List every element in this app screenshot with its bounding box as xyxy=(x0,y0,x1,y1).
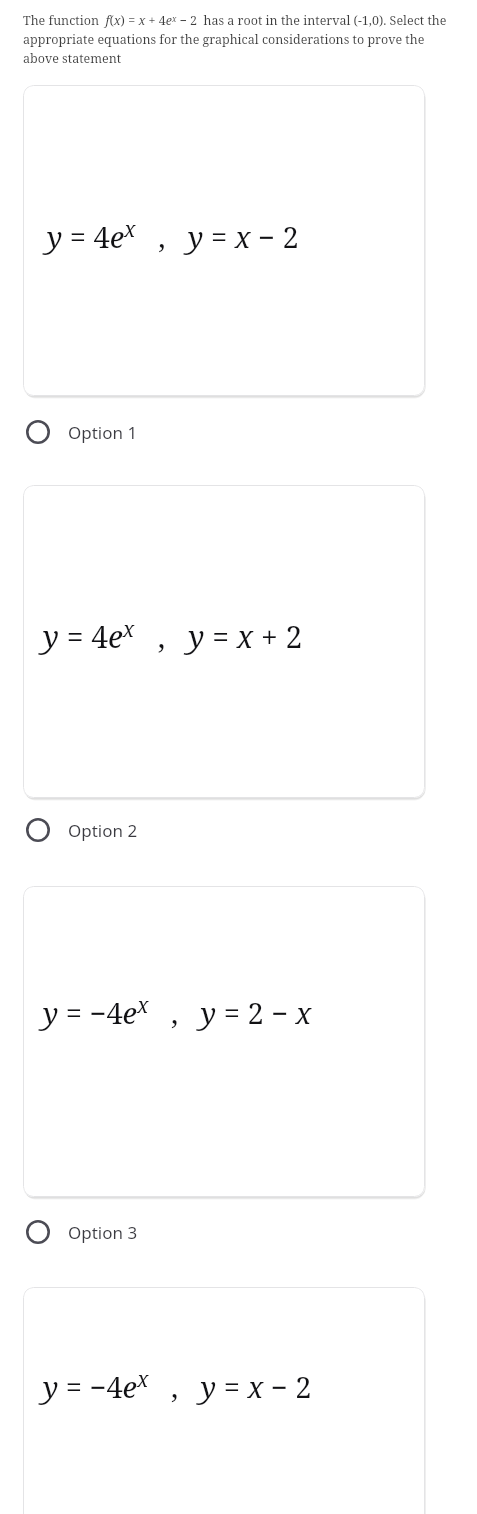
button[interactable]: Option 2 xyxy=(16,808,316,852)
button[interactable]: Option 3 xyxy=(16,1210,316,1254)
staticText: The function f(x) = x + 4ex − 2 has a ro… xyxy=(23,12,457,67)
staticText: Option 3 xyxy=(68,1221,138,1244)
staticText: Option 2 xyxy=(68,819,138,842)
staticText: y = −4ex , y = 2 − x xyxy=(43,991,312,1033)
button[interactable]: y = 4ex , y = x + 2 xyxy=(23,485,425,798)
staticText: Option 1 xyxy=(68,421,138,444)
other: Option 3 xyxy=(16,1210,60,1254)
staticText: y = 4ex , y = x − 2 xyxy=(47,215,299,257)
other: Option 2 xyxy=(16,808,60,852)
button[interactable]: Option 1 xyxy=(16,410,316,454)
button[interactable]: y = 4ex , y = x − 2 xyxy=(23,85,425,396)
staticText: y = 4ex , y = x + 2 xyxy=(43,615,303,657)
button[interactable]: y = −4ex , y = 2 − x xyxy=(23,886,425,1197)
button[interactable]: y = −4ex , y = x − 2 xyxy=(23,1287,425,1514)
other: Option 1 xyxy=(16,410,60,454)
staticText: y = −4ex , y = x − 2 xyxy=(43,1365,312,1407)
